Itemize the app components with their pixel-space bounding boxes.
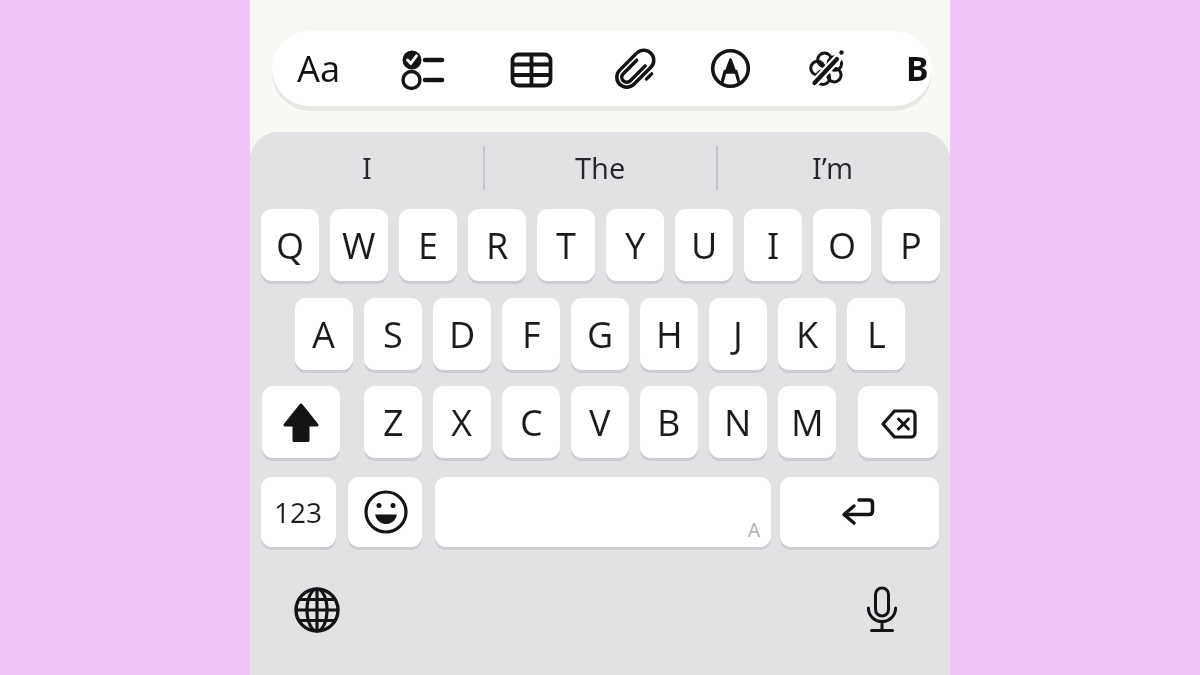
staticText: R xyxy=(486,221,509,270)
staticText: N xyxy=(724,398,752,447)
button[interactable]: The xyxy=(520,137,680,197)
button[interactable] xyxy=(855,583,909,637)
button[interactable]: E xyxy=(399,209,457,284)
staticText: M xyxy=(791,398,824,447)
button[interactable]: S xyxy=(364,298,422,373)
button[interactable]: M xyxy=(778,386,836,461)
staticText: J xyxy=(733,310,743,359)
staticText: Q xyxy=(276,221,305,270)
button[interactable]: I xyxy=(744,209,802,284)
button[interactable]: B xyxy=(837,38,997,98)
button[interactable]: T xyxy=(537,209,595,284)
button[interactable]: O xyxy=(813,209,871,284)
staticText: K xyxy=(796,310,819,359)
button[interactable] xyxy=(800,40,856,96)
button[interactable]: Y xyxy=(606,209,664,284)
button[interactable]: U xyxy=(675,209,733,284)
button[interactable]: X xyxy=(433,386,491,461)
button[interactable] xyxy=(262,386,340,461)
button[interactable]: C xyxy=(502,386,560,461)
button[interactable]: N xyxy=(709,386,767,461)
button[interactable]: A xyxy=(435,477,771,550)
button[interactable]: V xyxy=(571,386,629,461)
staticText: F xyxy=(522,310,541,359)
staticText: The xyxy=(575,148,626,187)
button[interactable] xyxy=(702,40,758,96)
staticText: Y xyxy=(625,221,646,270)
button[interactable]: J xyxy=(709,298,767,373)
staticText: D xyxy=(449,310,476,359)
button[interactable]: P xyxy=(882,209,940,284)
staticText: I xyxy=(767,221,780,270)
button[interactable]: G xyxy=(571,298,629,373)
staticText: A xyxy=(748,517,761,543)
button[interactable]: K xyxy=(778,298,836,373)
staticText: V xyxy=(589,398,611,447)
button[interactable]: I xyxy=(287,137,447,197)
staticText: L xyxy=(867,310,886,359)
staticText: I xyxy=(362,148,372,187)
staticText: G xyxy=(587,310,614,359)
button[interactable]: A xyxy=(295,298,353,373)
staticText: W xyxy=(342,221,376,270)
staticText: X xyxy=(451,398,473,447)
button[interactable] xyxy=(858,386,938,461)
button[interactable]: L xyxy=(847,298,905,373)
button[interactable]: Aa xyxy=(239,38,399,98)
staticText: B xyxy=(906,45,929,91)
button[interactable]: 123 xyxy=(261,477,336,550)
staticText: I’m xyxy=(812,148,854,187)
button[interactable] xyxy=(608,40,664,96)
button[interactable] xyxy=(348,477,422,550)
button[interactable] xyxy=(503,40,559,96)
staticText: H xyxy=(656,310,683,359)
staticText: A xyxy=(312,310,336,359)
button[interactable]: H xyxy=(640,298,698,373)
staticText: C xyxy=(520,398,543,447)
staticText: 123 xyxy=(274,493,323,531)
button[interactable] xyxy=(388,40,444,96)
staticText: Z xyxy=(383,398,404,447)
staticText: P xyxy=(900,221,922,270)
button[interactable] xyxy=(780,477,939,550)
staticText: B xyxy=(657,398,681,447)
button[interactable]: D xyxy=(433,298,491,373)
button[interactable]: Q xyxy=(261,209,319,284)
staticText: U xyxy=(691,221,718,270)
staticText: Aa xyxy=(297,44,341,93)
button[interactable]: I’m xyxy=(753,137,913,197)
button[interactable] xyxy=(272,31,932,106)
button[interactable]: W xyxy=(330,209,388,284)
staticText: S xyxy=(383,310,403,359)
staticText: T xyxy=(556,221,577,270)
staticText: O xyxy=(828,221,857,270)
button[interactable]: Z xyxy=(364,386,422,461)
button[interactable] xyxy=(290,583,344,637)
button[interactable]: F xyxy=(502,298,560,373)
button[interactable]: B xyxy=(640,386,698,461)
staticText: E xyxy=(418,221,439,270)
button[interactable]: R xyxy=(468,209,526,284)
